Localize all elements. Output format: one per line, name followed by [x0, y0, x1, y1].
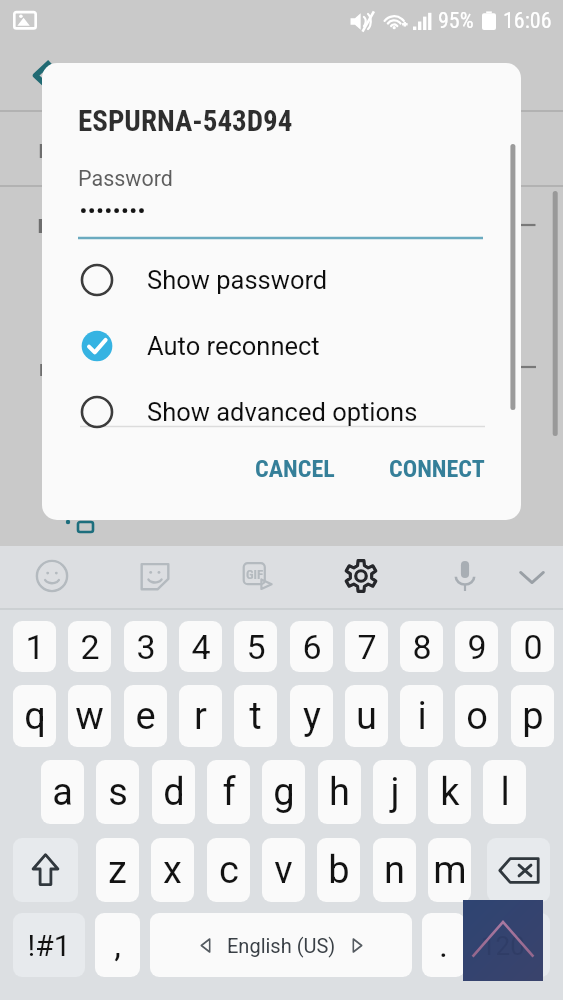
button[interactable]: m	[428, 838, 471, 902]
staticText: CONNECT	[389, 455, 485, 483]
button[interactable]: !#1	[13, 913, 85, 977]
button[interactable]: .	[422, 913, 465, 977]
staticText: r	[194, 694, 207, 739]
button[interactable]: e	[124, 685, 167, 747]
staticText: g	[273, 770, 295, 815]
staticText: 8	[412, 627, 432, 667]
staticText: 95%	[438, 8, 474, 34]
button[interactable]: CONNECT	[381, 445, 477, 493]
staticText: h	[329, 770, 350, 815]
button[interactable]: Settings	[344, 559, 378, 593]
staticText: v	[274, 848, 293, 893]
button[interactable]: 9	[455, 621, 498, 672]
button[interactable]: j	[373, 760, 416, 824]
staticText: c	[219, 848, 239, 893]
staticText: m	[433, 848, 467, 893]
button[interactable]: g	[262, 760, 305, 824]
button[interactable]: 6	[290, 621, 333, 672]
button[interactable]: Auto reconnect	[42, 313, 521, 379]
button[interactable]: 0	[511, 621, 554, 672]
button[interactable]: x	[151, 838, 194, 902]
staticText: y	[303, 694, 321, 739]
button[interactable]: Stickers	[137, 558, 173, 594]
staticText: 0	[523, 627, 543, 667]
button[interactable]: 1	[13, 621, 56, 672]
staticText: u	[356, 694, 377, 739]
staticText: o	[466, 694, 488, 739]
staticText: t	[249, 694, 262, 739]
staticText: 1	[25, 627, 45, 667]
button[interactable]: r	[179, 685, 222, 747]
button[interactable]: f	[207, 760, 250, 824]
button[interactable]: 2	[68, 621, 111, 672]
staticText: 3	[136, 627, 156, 667]
staticText: CANCEL	[255, 455, 335, 483]
staticText: 9	[467, 627, 487, 667]
button[interactable]: q	[13, 685, 56, 747]
button[interactable]: t	[234, 685, 277, 747]
staticText: English (US)	[227, 934, 336, 957]
button[interactable]: w	[68, 685, 111, 747]
button[interactable]: z	[96, 838, 139, 902]
button[interactable]: c	[207, 838, 250, 902]
button[interactable]: d	[152, 760, 195, 824]
button[interactable]: b	[317, 838, 360, 902]
staticText: f	[222, 770, 236, 815]
button[interactable]: 8	[400, 621, 443, 672]
staticText: 120	[481, 931, 525, 961]
staticText: Auto reconnect	[147, 331, 320, 361]
staticText: 7	[357, 627, 377, 667]
button[interactable]: s	[96, 760, 139, 824]
staticText: 5	[246, 627, 266, 667]
staticText: .	[439, 925, 448, 965]
button[interactable]: Backspace	[487, 838, 550, 902]
button[interactable]: l	[483, 760, 526, 824]
button[interactable]: h	[318, 760, 361, 824]
staticText: l	[500, 770, 510, 815]
button[interactable]: Hide keyboard	[517, 561, 547, 591]
staticText: x	[163, 848, 182, 893]
button[interactable]: y	[290, 685, 333, 747]
button[interactable]: Show password	[42, 247, 521, 313]
button[interactable]: k	[428, 760, 471, 824]
button[interactable]: Shift	[13, 838, 78, 902]
button[interactable]: 4	[179, 621, 222, 672]
staticText: Password	[78, 166, 173, 191]
staticText: ,	[114, 925, 121, 965]
staticText: z	[108, 848, 127, 893]
button[interactable]: v	[262, 838, 305, 902]
staticText: 6	[302, 627, 322, 667]
staticText: ESPURNA-543D94	[78, 104, 293, 138]
button[interactable]: p	[511, 685, 554, 747]
staticText: !#1	[27, 928, 71, 963]
staticText: n	[384, 848, 405, 893]
staticText: q	[24, 694, 46, 739]
button[interactable]: i	[400, 685, 443, 747]
button[interactable]: ,	[95, 913, 140, 977]
staticText: k	[440, 770, 460, 815]
button[interactable]: Enter	[473, 913, 550, 977]
staticText: a	[52, 770, 73, 815]
staticText: e	[135, 694, 156, 739]
button[interactable]: Emoji	[34, 558, 70, 594]
button[interactable]: Voice input	[448, 558, 482, 592]
button[interactable]: n	[373, 838, 416, 902]
staticText: w	[75, 694, 104, 739]
button[interactable]: o	[455, 685, 498, 747]
button[interactable]: CANCEL	[247, 445, 327, 493]
button[interactable]: 5	[234, 621, 277, 672]
staticText: i	[417, 694, 427, 739]
button[interactable]: Show advanced options	[42, 379, 521, 445]
staticText: GIF	[246, 567, 264, 582]
staticText: Show password	[147, 265, 328, 295]
staticText: d	[163, 770, 185, 815]
staticText: 2	[80, 627, 100, 667]
button[interactable]: 7	[345, 621, 388, 672]
button[interactable]: English (US)	[150, 913, 412, 977]
staticText: j	[390, 770, 400, 815]
button[interactable]: GIF	[241, 559, 275, 593]
staticText: s	[108, 770, 128, 815]
button[interactable]: u	[345, 685, 388, 747]
button[interactable]: 3	[124, 621, 167, 672]
button[interactable]: a	[41, 760, 84, 824]
